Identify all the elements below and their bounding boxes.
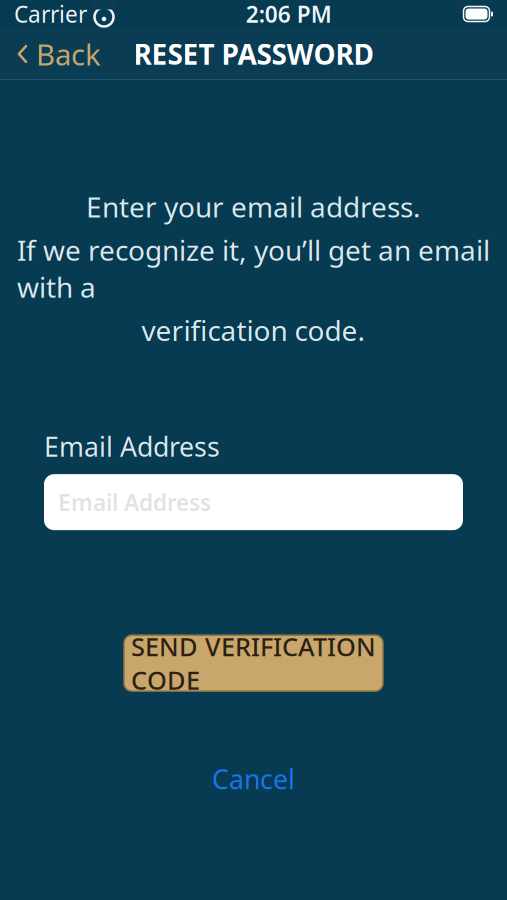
staticText: Cancel — [212, 761, 295, 796]
staticText: Email Address — [44, 429, 220, 464]
staticText: Carrier — [14, 0, 87, 29]
staticText: verification code. — [141, 311, 365, 349]
staticText: Email Address — [58, 487, 211, 517]
button[interactable]: SEND VERIFICATION CODE — [124, 635, 383, 691]
staticText: 2:06 PM — [246, 0, 332, 29]
staticText: RESET PASSWORD — [133, 35, 373, 73]
staticText: Back — [36, 34, 101, 73]
staticText: SEND VERIFICATION CODE — [131, 629, 376, 697]
staticText: If we recognize it, you’ll get an email … — [17, 231, 490, 306]
staticText: Enter your email address. — [86, 188, 421, 225]
button[interactable]: Cancel — [184, 753, 323, 804]
button[interactable]: Back — [0, 26, 101, 81]
